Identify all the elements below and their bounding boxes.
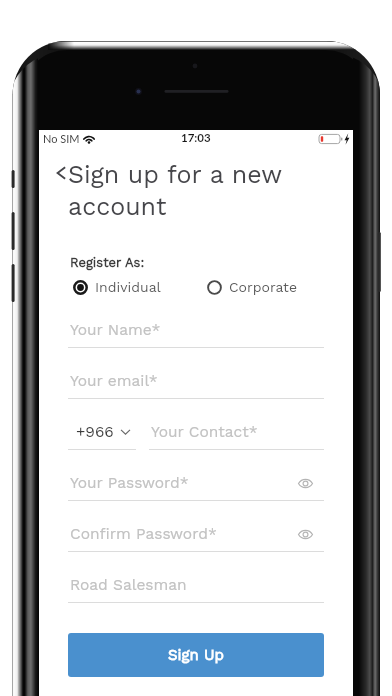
- button[interactable]: Your email*: [68, 364, 324, 398]
- button[interactable]: Your Name*: [68, 313, 324, 347]
- staticText: Your email*: [70, 372, 158, 390]
- staticText: Corporate: [229, 279, 297, 295]
- other: Show password: [298, 529, 313, 540]
- button[interactable]: Road Salesman: [68, 568, 324, 602]
- button[interactable]: Back: [55, 165, 68, 181]
- staticText: No SIM: [43, 132, 80, 145]
- button[interactable]: Your Password*: [68, 466, 324, 500]
- button[interactable]: Corporate: [207, 279, 297, 295]
- button[interactable]: Sign Up: [68, 633, 324, 677]
- staticText: Individual: [95, 279, 161, 295]
- button[interactable]: +966: [68, 415, 136, 449]
- staticText: Confirm Password*: [70, 525, 217, 543]
- staticText: Sign Up: [168, 646, 224, 664]
- button[interactable]: Individual: [73, 279, 161, 295]
- button[interactable]: Your Contact*: [149, 415, 324, 449]
- staticText: +966: [76, 423, 114, 441]
- other: Battery charging: [319, 133, 349, 145]
- button[interactable]: Confirm Password*: [68, 517, 324, 551]
- staticText: Road Salesman: [70, 576, 187, 594]
- staticText: Sign up for a new account: [68, 160, 300, 221]
- staticText: Your Contact*: [151, 423, 258, 441]
- staticText: Your Password*: [70, 474, 189, 492]
- staticText: Register As:: [70, 255, 145, 270]
- staticText: Your Name*: [70, 321, 161, 339]
- other: Show password: [298, 478, 313, 489]
- staticText: 17:03: [181, 131, 211, 145]
